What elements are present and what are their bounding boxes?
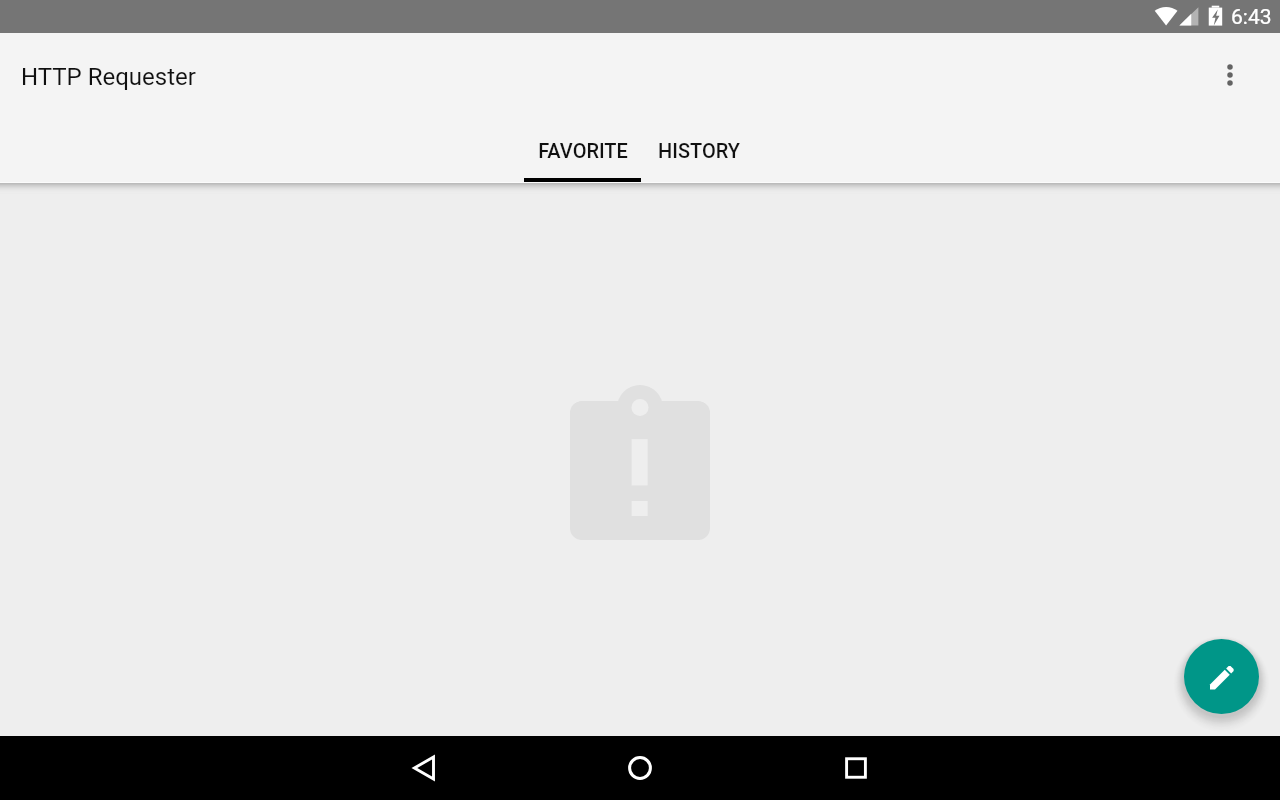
button[interactable]: FAVORITE	[524, 115, 641, 182]
button[interactable]: More options	[1206, 50, 1254, 98]
staticText: FAVORITE	[538, 139, 628, 162]
staticText: 6:43	[1231, 5, 1272, 30]
button[interactable]: Home	[608, 736, 672, 800]
button[interactable]: Back	[392, 736, 456, 800]
button[interactable]: New request	[1184, 639, 1259, 714]
staticText: HISTORY	[658, 139, 740, 162]
staticText: HTTP Requester	[21, 63, 196, 91]
button[interactable]: Recent apps	[824, 736, 888, 800]
button[interactable]: HISTORY	[641, 115, 757, 182]
